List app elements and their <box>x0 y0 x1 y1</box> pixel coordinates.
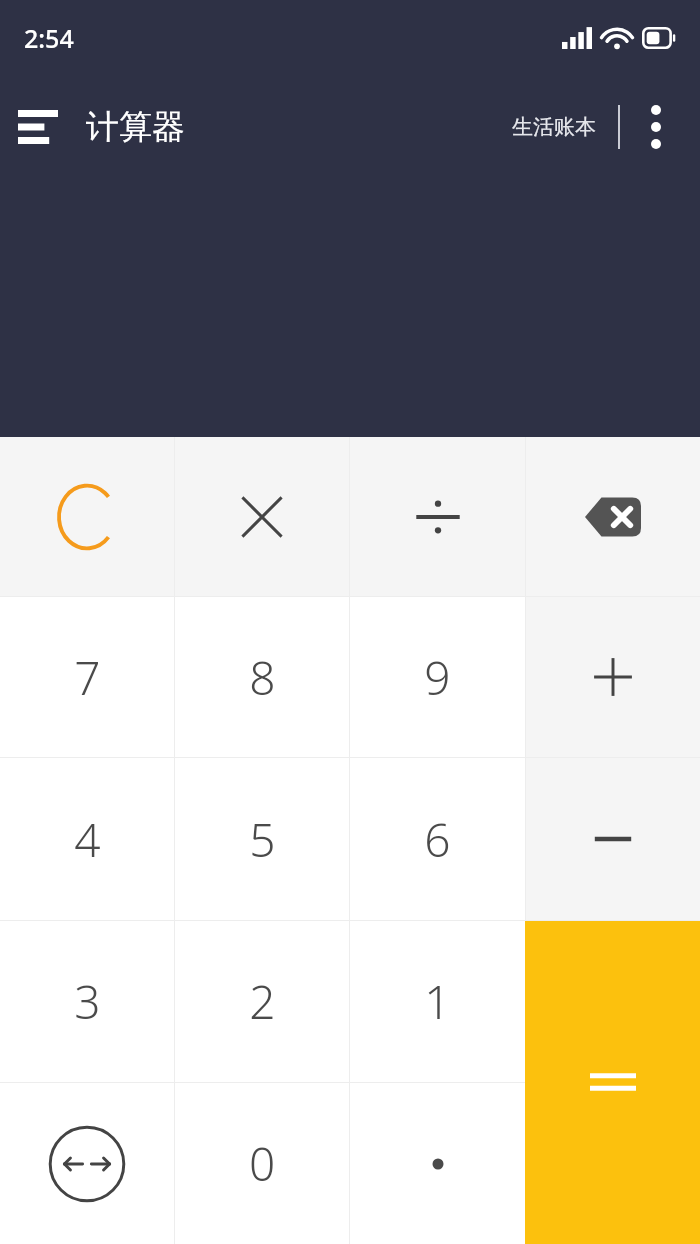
staticText: 8 <box>249 646 276 709</box>
button[interactable]: Plus <box>526 597 700 757</box>
staticText: 计算器 <box>86 106 185 148</box>
staticText: 0 <box>249 1132 276 1195</box>
staticText: 5 <box>249 808 276 871</box>
staticText: 3 <box>74 970 101 1033</box>
staticText: 4 <box>74 808 101 871</box>
button[interactable]: 6 <box>350 758 525 920</box>
button[interactable]: 9 <box>350 597 525 757</box>
button[interactable]: Backspace <box>526 437 700 596</box>
staticText: 1 <box>424 970 451 1033</box>
staticText: 9 <box>424 646 451 709</box>
button[interactable]: 7 <box>0 597 174 757</box>
button[interactable]: More options <box>620 91 692 163</box>
button[interactable]: Clear <box>0 437 174 596</box>
button[interactable]: 0 <box>175 1083 349 1244</box>
button[interactable]: Menu <box>0 89 76 165</box>
button[interactable]: 8 <box>175 597 349 757</box>
staticText: 生活账本 <box>512 114 596 140</box>
button[interactable]: 生活账本 <box>502 102 606 152</box>
button[interactable]: Minus <box>526 758 700 920</box>
button[interactable]: 3 <box>0 921 174 1082</box>
staticText: 2:54 <box>24 21 74 55</box>
button[interactable]: Divide <box>350 437 525 596</box>
button[interactable]: 5 <box>175 758 349 920</box>
staticText: 6 <box>424 808 451 871</box>
button[interactable]: Multiply <box>175 437 349 596</box>
button[interactable]: Expand <box>0 1083 174 1244</box>
button[interactable]: 1 <box>350 921 525 1082</box>
button[interactable]: 2 <box>175 921 349 1082</box>
staticText: 2 <box>249 970 276 1033</box>
button[interactable]: 4 <box>0 758 174 920</box>
button[interactable] <box>350 1083 525 1244</box>
button[interactable]: Equals <box>525 921 700 1244</box>
staticText: 7 <box>74 646 101 709</box>
